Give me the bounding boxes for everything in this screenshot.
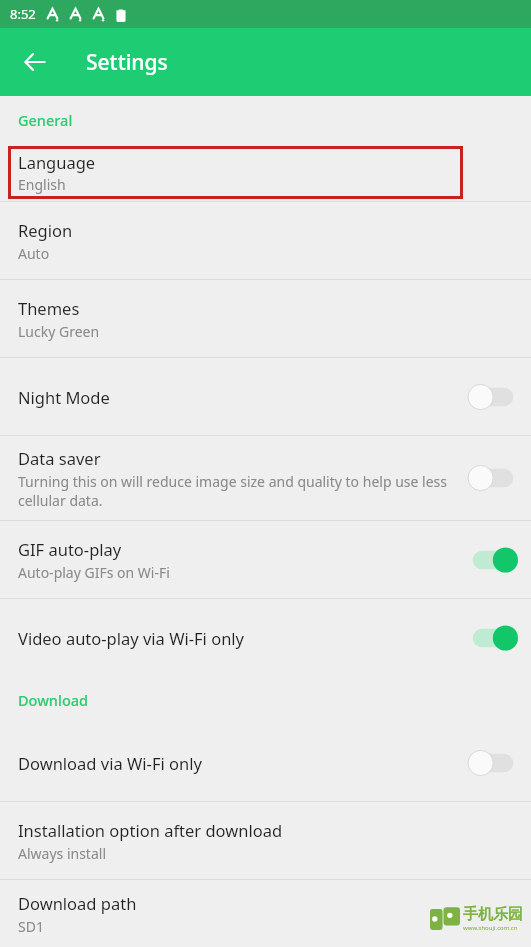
staticText: Download xyxy=(18,690,89,710)
staticText: Turning this on will reduce image size a… xyxy=(18,472,470,510)
button[interactable]: Toggle on xyxy=(467,623,519,653)
button[interactable]: Toggle off xyxy=(467,382,519,412)
staticText: Lucky Green xyxy=(18,322,418,341)
staticText: 手机乐园 xyxy=(463,905,523,924)
staticText: 8:52 xyxy=(10,5,36,23)
button[interactable]: Download via Wi-Fi only xyxy=(0,724,531,801)
staticText: Auto xyxy=(18,244,418,263)
staticText: English xyxy=(18,175,66,194)
staticText: Auto-play GIFs on Wi-Fi xyxy=(18,563,418,582)
button[interactable]: Night Mode xyxy=(0,358,531,435)
staticText: SD1 xyxy=(18,917,418,936)
staticText: Installation option after download xyxy=(18,819,283,841)
staticText: Video auto-play via Wi-Fi only xyxy=(18,627,245,649)
button[interactable]: Video auto-play via Wi-Fi only xyxy=(0,599,531,676)
staticText: GIF auto-play xyxy=(18,538,122,560)
staticText: Always install xyxy=(18,844,418,863)
button[interactable]: Language xyxy=(0,144,531,201)
staticText: Region xyxy=(18,219,73,241)
staticText: Night Mode xyxy=(18,386,110,408)
button[interactable]: Back xyxy=(14,41,56,83)
button[interactable]: Themes xyxy=(0,280,531,357)
staticText: Language xyxy=(18,151,96,173)
staticText: Download path xyxy=(18,892,137,914)
button[interactable]: Region xyxy=(0,202,531,279)
button[interactable]: GIF auto-play xyxy=(0,521,531,598)
button[interactable]: Data saver xyxy=(0,436,531,520)
staticText: General xyxy=(18,110,73,130)
staticText: Data saver xyxy=(18,447,101,469)
staticText: Download via Wi-Fi only xyxy=(18,752,202,774)
button[interactable]: Toggle off xyxy=(467,463,519,493)
staticText: Settings xyxy=(86,48,168,77)
button[interactable]: Toggle on xyxy=(467,545,519,575)
staticText: Themes xyxy=(18,297,80,319)
button[interactable]: Installation option after download xyxy=(0,802,531,879)
button[interactable]: Toggle off xyxy=(467,748,519,778)
button[interactable]: Download path xyxy=(0,880,531,947)
staticText: www.shouji.com.cn xyxy=(463,924,518,932)
